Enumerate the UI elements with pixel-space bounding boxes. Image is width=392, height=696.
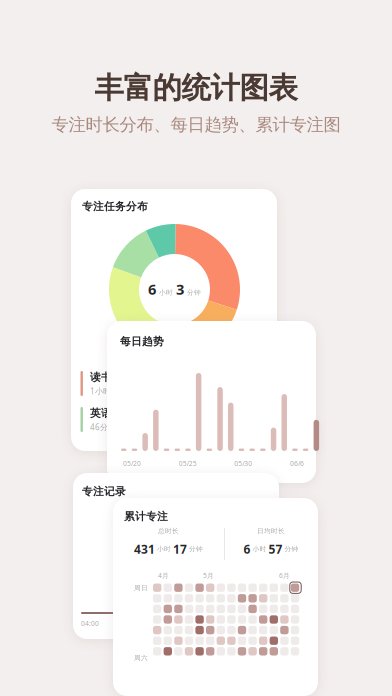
staticText: 累计专注: [124, 510, 168, 523]
staticText: 专注时长分布、每日趋势、累计专注图: [51, 114, 340, 135]
staticText: 周日: [134, 584, 148, 592]
staticText: 每日趋势: [120, 335, 164, 348]
staticText: 57: [268, 541, 282, 557]
staticText: 05/25: [179, 459, 197, 468]
staticText: 读书: [90, 371, 112, 384]
staticText: 4月: [158, 571, 169, 580]
staticText: 5月: [203, 571, 214, 580]
staticText: 丰富的统计图表: [94, 70, 297, 106]
staticText: 分钟: [187, 288, 201, 297]
staticText: 小时: [250, 545, 268, 553]
staticText: 05/30: [234, 459, 252, 468]
staticText: 周六: [134, 654, 148, 662]
staticText: 6: [243, 541, 250, 557]
staticText: 6月: [279, 571, 290, 580]
staticText: 431: [134, 541, 155, 557]
staticText: 小时: [155, 545, 173, 553]
staticText: 06/6: [290, 459, 304, 468]
staticText: 1小时: [90, 386, 111, 396]
staticText: 分钟: [282, 545, 298, 553]
staticText: 6: [148, 279, 156, 299]
staticText: 英语: [90, 407, 112, 420]
staticText: 总时长: [158, 527, 179, 535]
staticText: 04:00: [81, 619, 99, 628]
staticText: 专注任务分布: [82, 200, 148, 213]
staticText: 专注记录: [82, 485, 126, 498]
staticText: 05/20: [123, 459, 141, 468]
staticText: 46分: [90, 422, 108, 432]
staticText: 日均时长: [257, 527, 285, 535]
staticText: 小时: [159, 288, 173, 297]
staticText: 分钟: [187, 545, 203, 553]
staticText: 17: [173, 541, 187, 557]
staticText: 3: [176, 279, 184, 299]
